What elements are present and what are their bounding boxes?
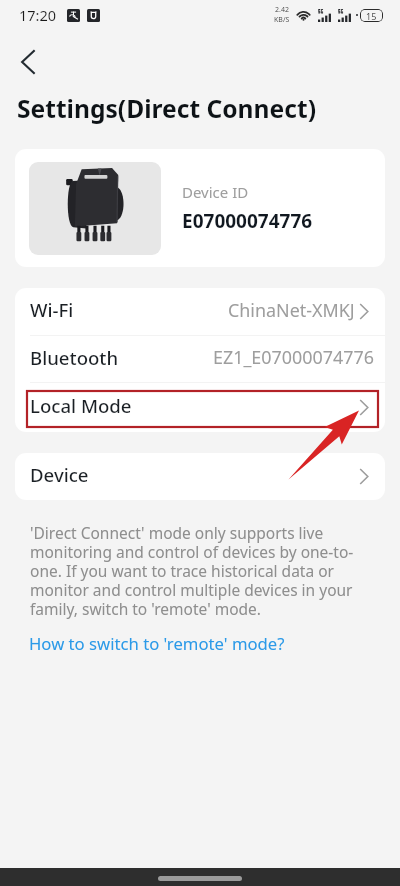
staticText: EZ1_E07000074776: [213, 345, 374, 369]
staticText: 17:20: [19, 5, 57, 25]
button[interactable]: Back: [9, 38, 45, 74]
staticText: ChinaNet-XMKJ: [228, 298, 355, 322]
button[interactable]: Wi-Fi: [15, 288, 385, 335]
button[interactable]: Device ID: [15, 149, 385, 267]
staticText: Local Mode: [30, 393, 132, 418]
staticText: 15: [366, 10, 377, 22]
button[interactable]: Local Mode: [15, 383, 385, 432]
staticText: Bluetooth: [30, 345, 119, 370]
button[interactable]: Device: [15, 453, 385, 500]
staticText: 2.42: [275, 5, 289, 15]
staticText: KB/S: [274, 15, 290, 25]
staticText: 'Direct Connect' mode only supports live…: [30, 522, 362, 620]
staticText: Wi-Fi: [30, 297, 74, 322]
button[interactable]: How to switch to 'remote' mode?: [28, 630, 286, 657]
button[interactable]: Bluetooth: [15, 336, 385, 382]
staticText: Device ID: [182, 182, 249, 202]
staticText: Device: [30, 462, 89, 487]
staticText: Settings(Direct Connect): [17, 92, 316, 126]
staticText: How to switch to 'remote' mode?: [29, 632, 285, 655]
staticText: E07000074776: [182, 208, 313, 234]
